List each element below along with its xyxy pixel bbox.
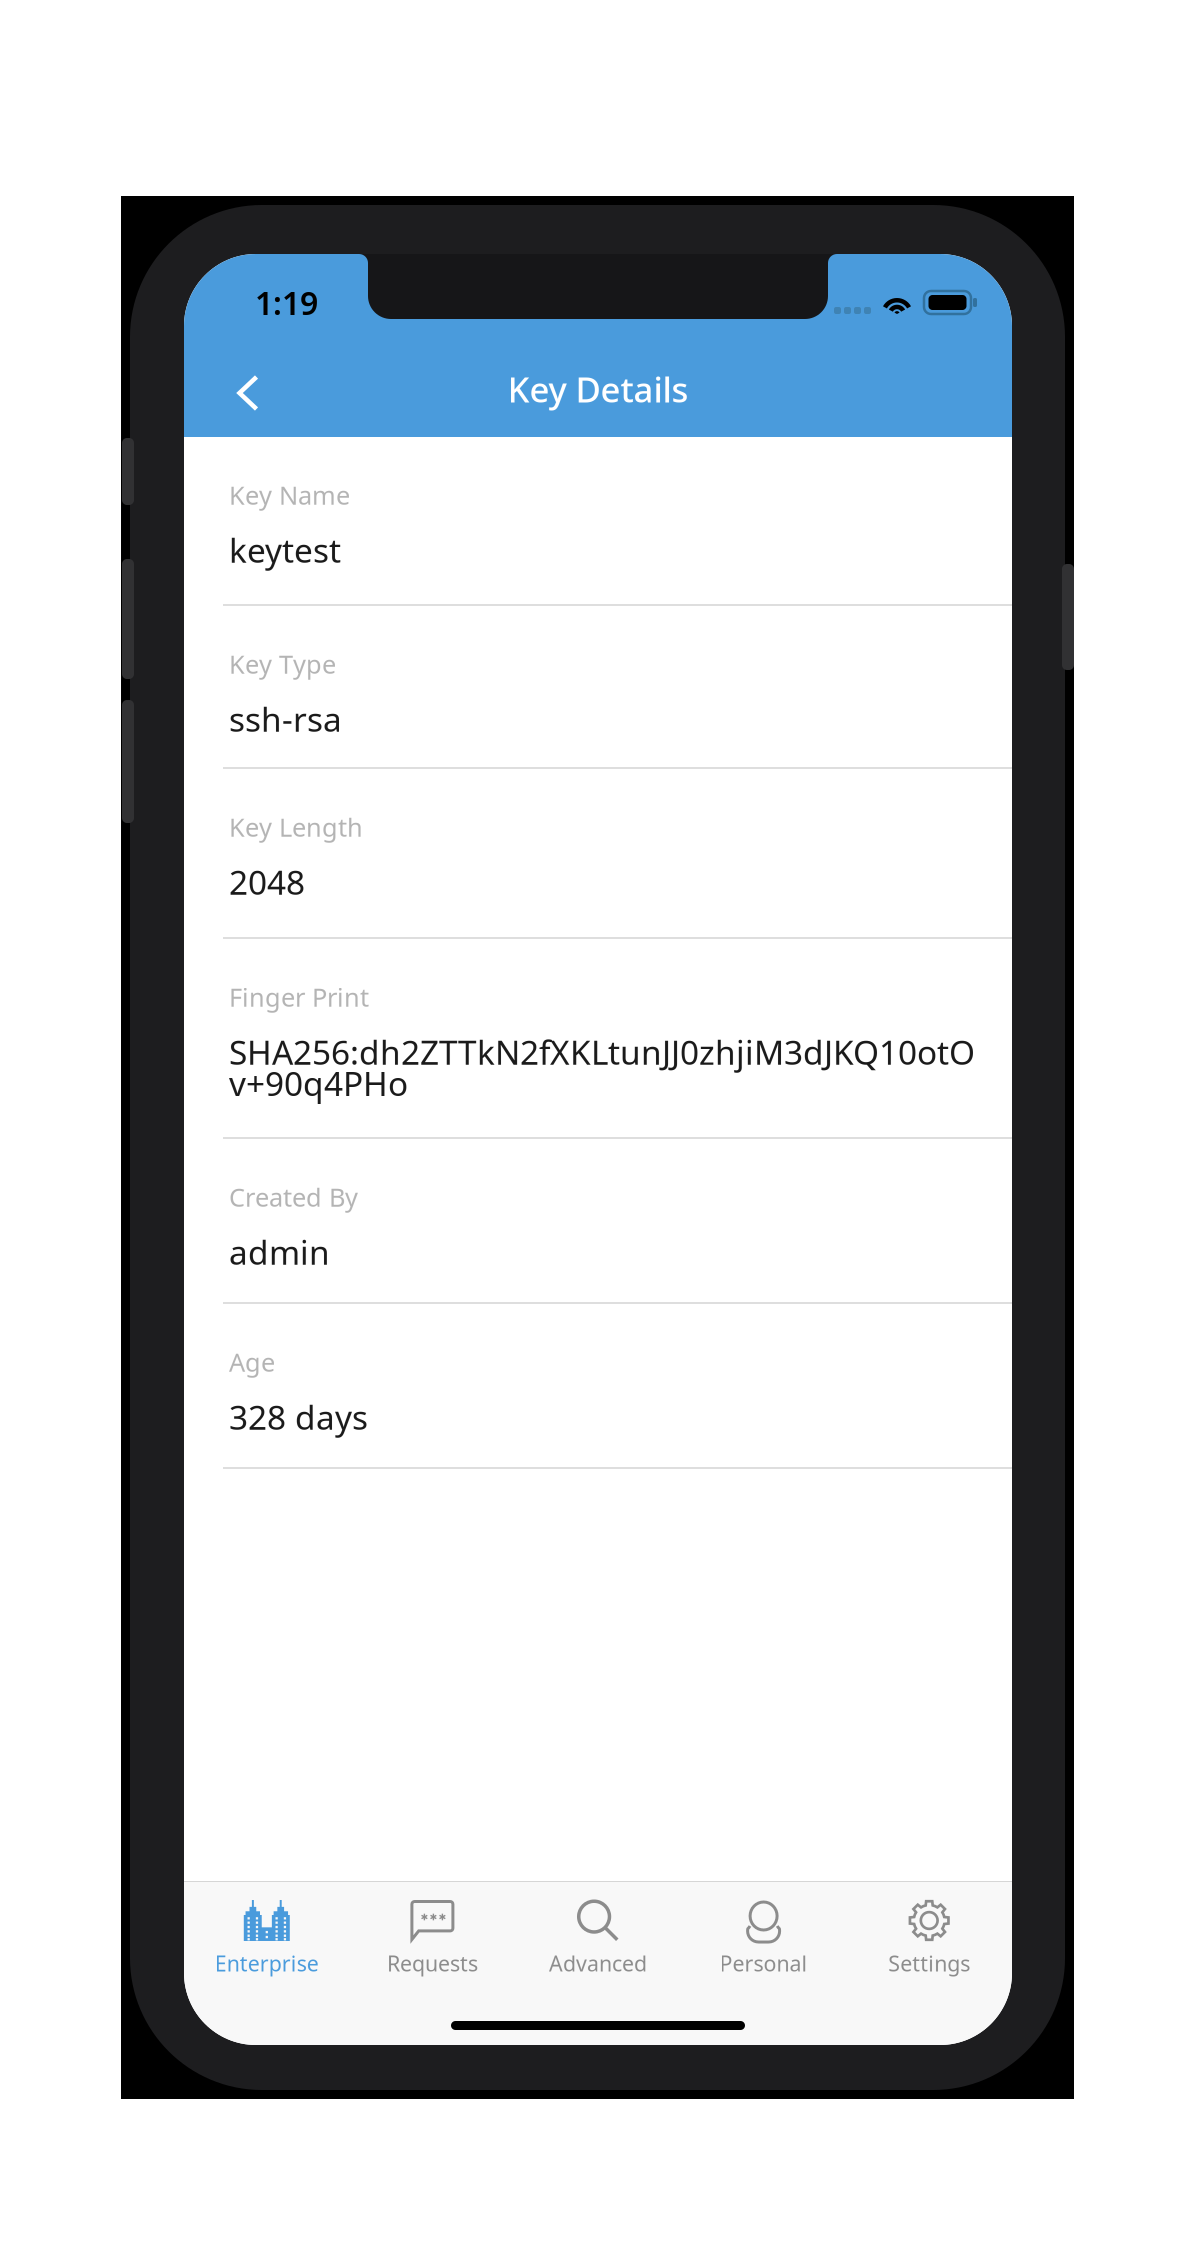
staticText: admin	[229, 1230, 330, 1274]
button[interactable]: Advanced	[515, 1882, 681, 1987]
staticText: Finger Print	[229, 980, 369, 1014]
staticText: Age	[229, 1345, 275, 1379]
button[interactable]: Personal	[681, 1882, 846, 1987]
button[interactable]: Requests	[350, 1882, 515, 1987]
staticText: Enterprise	[215, 1949, 319, 1977]
staticText: Key Length	[229, 810, 363, 844]
staticText: keytest	[229, 528, 341, 572]
button[interactable]: Back	[209, 345, 287, 433]
staticText: Key Type	[229, 647, 336, 681]
staticText: Created By	[229, 1180, 358, 1214]
staticText: 328 days	[229, 1395, 368, 1439]
staticText: Settings	[888, 1949, 970, 1977]
staticText: SHA256:dh2ZTTkN2fXKLtunJJ0zhjiM3dJKQ10ot…	[229, 1030, 975, 1105]
staticText: Personal	[720, 1949, 808, 1977]
staticText: Requests	[387, 1949, 478, 1977]
staticText: Key Name	[229, 478, 350, 512]
staticText: Advanced	[549, 1949, 647, 1977]
staticText: 2048	[229, 860, 305, 904]
staticText: 1:19	[255, 281, 318, 324]
staticText: ssh-rsa	[229, 697, 342, 741]
staticText: Key Details	[507, 366, 688, 412]
button[interactable]: Settings	[846, 1882, 1012, 1987]
button[interactable]: Enterprise	[184, 1882, 350, 1987]
